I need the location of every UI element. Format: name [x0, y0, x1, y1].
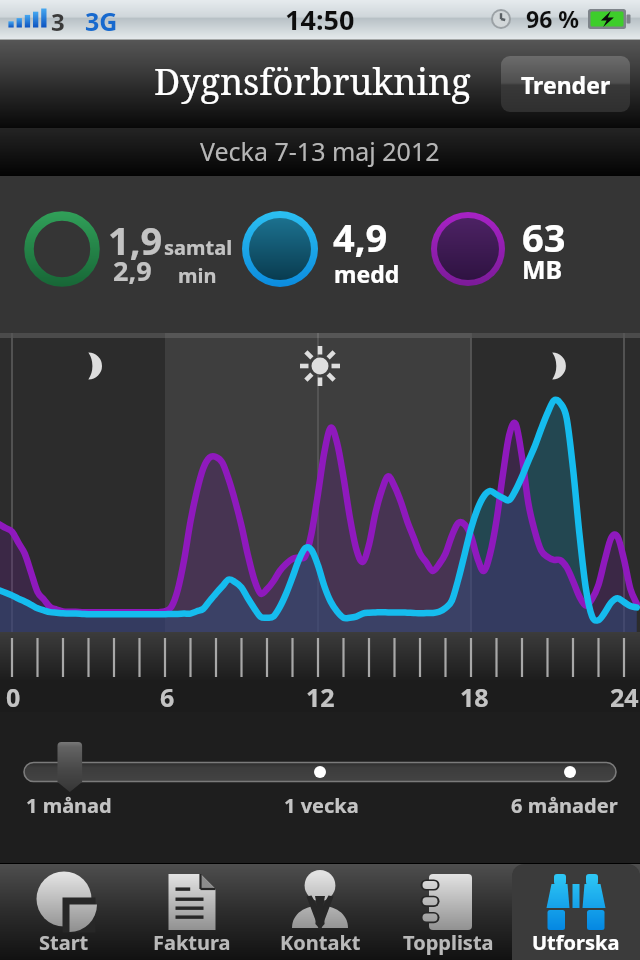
staticText: 96 % [526, 3, 580, 34]
staticText: Start [39, 929, 89, 956]
staticText: 1 vecka [284, 792, 359, 819]
staticText: MB [522, 252, 563, 286]
staticText: 18 [460, 680, 489, 714]
staticText: Trender [521, 69, 611, 100]
staticText: 63 [522, 211, 566, 263]
staticText: 6 [160, 680, 175, 714]
button[interactable]: Utforska [512, 864, 640, 960]
button[interactable]: Start [0, 864, 128, 960]
button[interactable]: 1,9 [0, 176, 640, 333]
staticText: 4,9 [333, 211, 388, 263]
staticText: Kontakt [280, 929, 361, 956]
staticText: 2,9 [113, 252, 152, 289]
staticText: samtal [164, 234, 233, 261]
staticText: 3 [51, 5, 65, 38]
staticText: Utforska [532, 929, 620, 956]
staticText: 12 [306, 680, 335, 714]
staticText: min [178, 262, 217, 289]
staticText: Topplista [403, 929, 494, 956]
button[interactable]: Trender [501, 56, 630, 112]
staticText: Vecka 7-13 maj 2012 [200, 134, 440, 168]
staticText: medd [334, 258, 400, 289]
staticText: 3G [85, 4, 118, 38]
staticText: 24 [610, 680, 639, 714]
button[interactable] [0, 712, 640, 863]
staticText: Dygnsförbrukning [154, 57, 471, 106]
staticText: 6 månader [511, 792, 618, 819]
staticText: 0 [6, 680, 21, 714]
staticText: 1,9 [108, 214, 163, 266]
button[interactable]: Kontakt [256, 864, 384, 960]
staticText: Faktura [153, 929, 231, 956]
button[interactable]: Faktura [128, 864, 256, 960]
button[interactable]: Topplista [384, 864, 512, 960]
staticText: 1 månad [26, 792, 112, 819]
staticText: 14:50 [285, 1, 355, 38]
